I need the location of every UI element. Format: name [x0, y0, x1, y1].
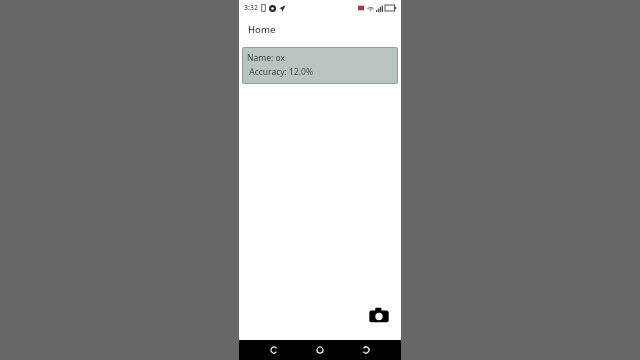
staticText: Home — [248, 23, 276, 36]
button[interactable]: Recent apps — [355, 340, 377, 360]
staticText: 3:32 — [244, 3, 258, 13]
button[interactable]: Name: ox — [242, 47, 398, 84]
button[interactable]: Open camera — [366, 302, 392, 328]
button[interactable]: Back — [263, 340, 285, 360]
staticText: Name: ox — [247, 52, 285, 64]
button[interactable]: Home — [309, 340, 331, 360]
staticText: Accuracy: 12.0% — [247, 66, 313, 78]
